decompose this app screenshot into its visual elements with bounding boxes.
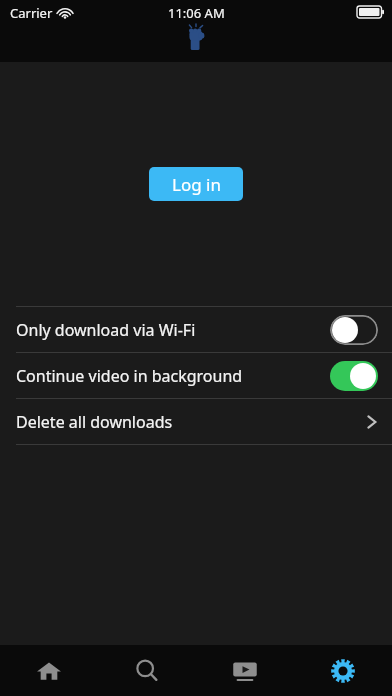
staticText: Continue video in background — [16, 365, 330, 387]
button[interactable]: On — [330, 361, 378, 391]
button[interactable]: Off — [330, 315, 378, 345]
staticText: Log in — [172, 173, 221, 196]
button[interactable]: Settings — [294, 645, 392, 696]
staticText: Only download via Wi-Fi — [16, 319, 330, 341]
button[interactable]: Search — [98, 645, 196, 696]
staticText: Delete all downloads — [16, 411, 366, 433]
button[interactable]: Home — [0, 645, 98, 696]
staticText: Carrier — [10, 4, 53, 22]
button[interactable]: Delete all downloads — [0, 399, 392, 444]
button[interactable]: Videos — [196, 645, 294, 696]
button[interactable]: Continue video in background — [0, 353, 392, 398]
staticText: 11:06 AM — [168, 4, 225, 22]
button[interactable]: Only download via Wi-Fi — [0, 307, 392, 352]
button[interactable]: Log in — [149, 167, 243, 201]
